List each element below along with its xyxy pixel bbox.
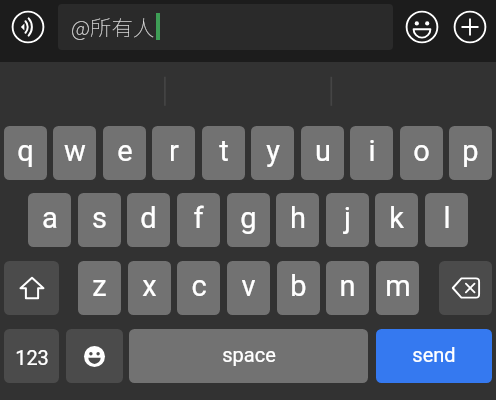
staticText: x <box>142 269 157 303</box>
button[interactable]: p <box>449 126 492 180</box>
button[interactable]: l <box>425 193 468 247</box>
staticText: space <box>222 343 276 366</box>
button[interactable]: Shift <box>4 261 59 315</box>
button[interactable]: send <box>376 329 492 383</box>
button[interactable]: Voice input <box>11 10 45 44</box>
staticText: a <box>42 201 58 235</box>
staticText: b <box>290 269 307 303</box>
staticText: @所有人 <box>71 11 155 42</box>
button[interactable]: e <box>103 126 146 180</box>
button[interactable]: u <box>301 126 344 180</box>
button[interactable]: Emoji <box>405 10 439 44</box>
staticText: j <box>344 201 351 235</box>
staticText: l <box>443 201 451 235</box>
staticText: w <box>64 134 86 168</box>
staticText: f <box>193 201 204 235</box>
button[interactable]: h <box>276 193 319 247</box>
staticText: v <box>241 269 256 303</box>
button[interactable]: v <box>227 261 270 315</box>
staticText: m <box>385 269 411 303</box>
staticText: n <box>339 269 356 303</box>
button[interactable]: x <box>128 261 171 315</box>
staticText: y <box>266 134 280 168</box>
button[interactable]: @所有人 <box>58 4 393 50</box>
button[interactable]: Emoji keyboard <box>66 329 123 383</box>
button[interactable]: g <box>227 193 270 247</box>
button[interactable]: k <box>375 193 418 247</box>
button[interactable]: b <box>277 261 320 315</box>
button[interactable]: i <box>350 126 393 180</box>
staticText: g <box>240 201 257 235</box>
button[interactable]: z <box>78 261 121 315</box>
staticText: o <box>413 134 430 168</box>
button[interactable]: n <box>326 261 369 315</box>
staticText: t <box>219 134 229 168</box>
button[interactable]: j <box>326 193 369 247</box>
button[interactable]: 123 <box>4 329 59 383</box>
button[interactable]: q <box>4 126 47 180</box>
button[interactable]: r <box>152 126 195 180</box>
button[interactable]: o <box>400 126 443 180</box>
staticText: q <box>17 134 34 168</box>
staticText: k <box>389 201 404 235</box>
button[interactable]: Backspace <box>439 261 492 315</box>
staticText: u <box>315 134 331 168</box>
staticText: h <box>290 201 306 235</box>
staticText: send <box>412 343 456 366</box>
staticText: r <box>169 134 179 168</box>
button[interactable]: m <box>376 261 419 315</box>
button[interactable]: space <box>129 329 368 383</box>
staticText: e <box>117 134 133 168</box>
staticText: p <box>462 134 479 168</box>
staticText: 123 <box>15 346 49 369</box>
button[interactable]: a <box>28 193 71 247</box>
button[interactable]: Add <box>453 10 487 44</box>
button[interactable]: s <box>78 193 121 247</box>
button[interactable]: y <box>251 126 294 180</box>
button[interactable]: f <box>177 193 220 247</box>
staticText: z <box>92 269 107 303</box>
button[interactable]: c <box>177 261 220 315</box>
button[interactable]: w <box>53 126 96 180</box>
staticText: i <box>368 134 376 168</box>
staticText: c <box>191 269 207 303</box>
staticText: d <box>140 201 157 235</box>
button[interactable]: t <box>202 126 245 180</box>
button[interactable]: d <box>127 193 170 247</box>
staticText: s <box>92 201 107 235</box>
